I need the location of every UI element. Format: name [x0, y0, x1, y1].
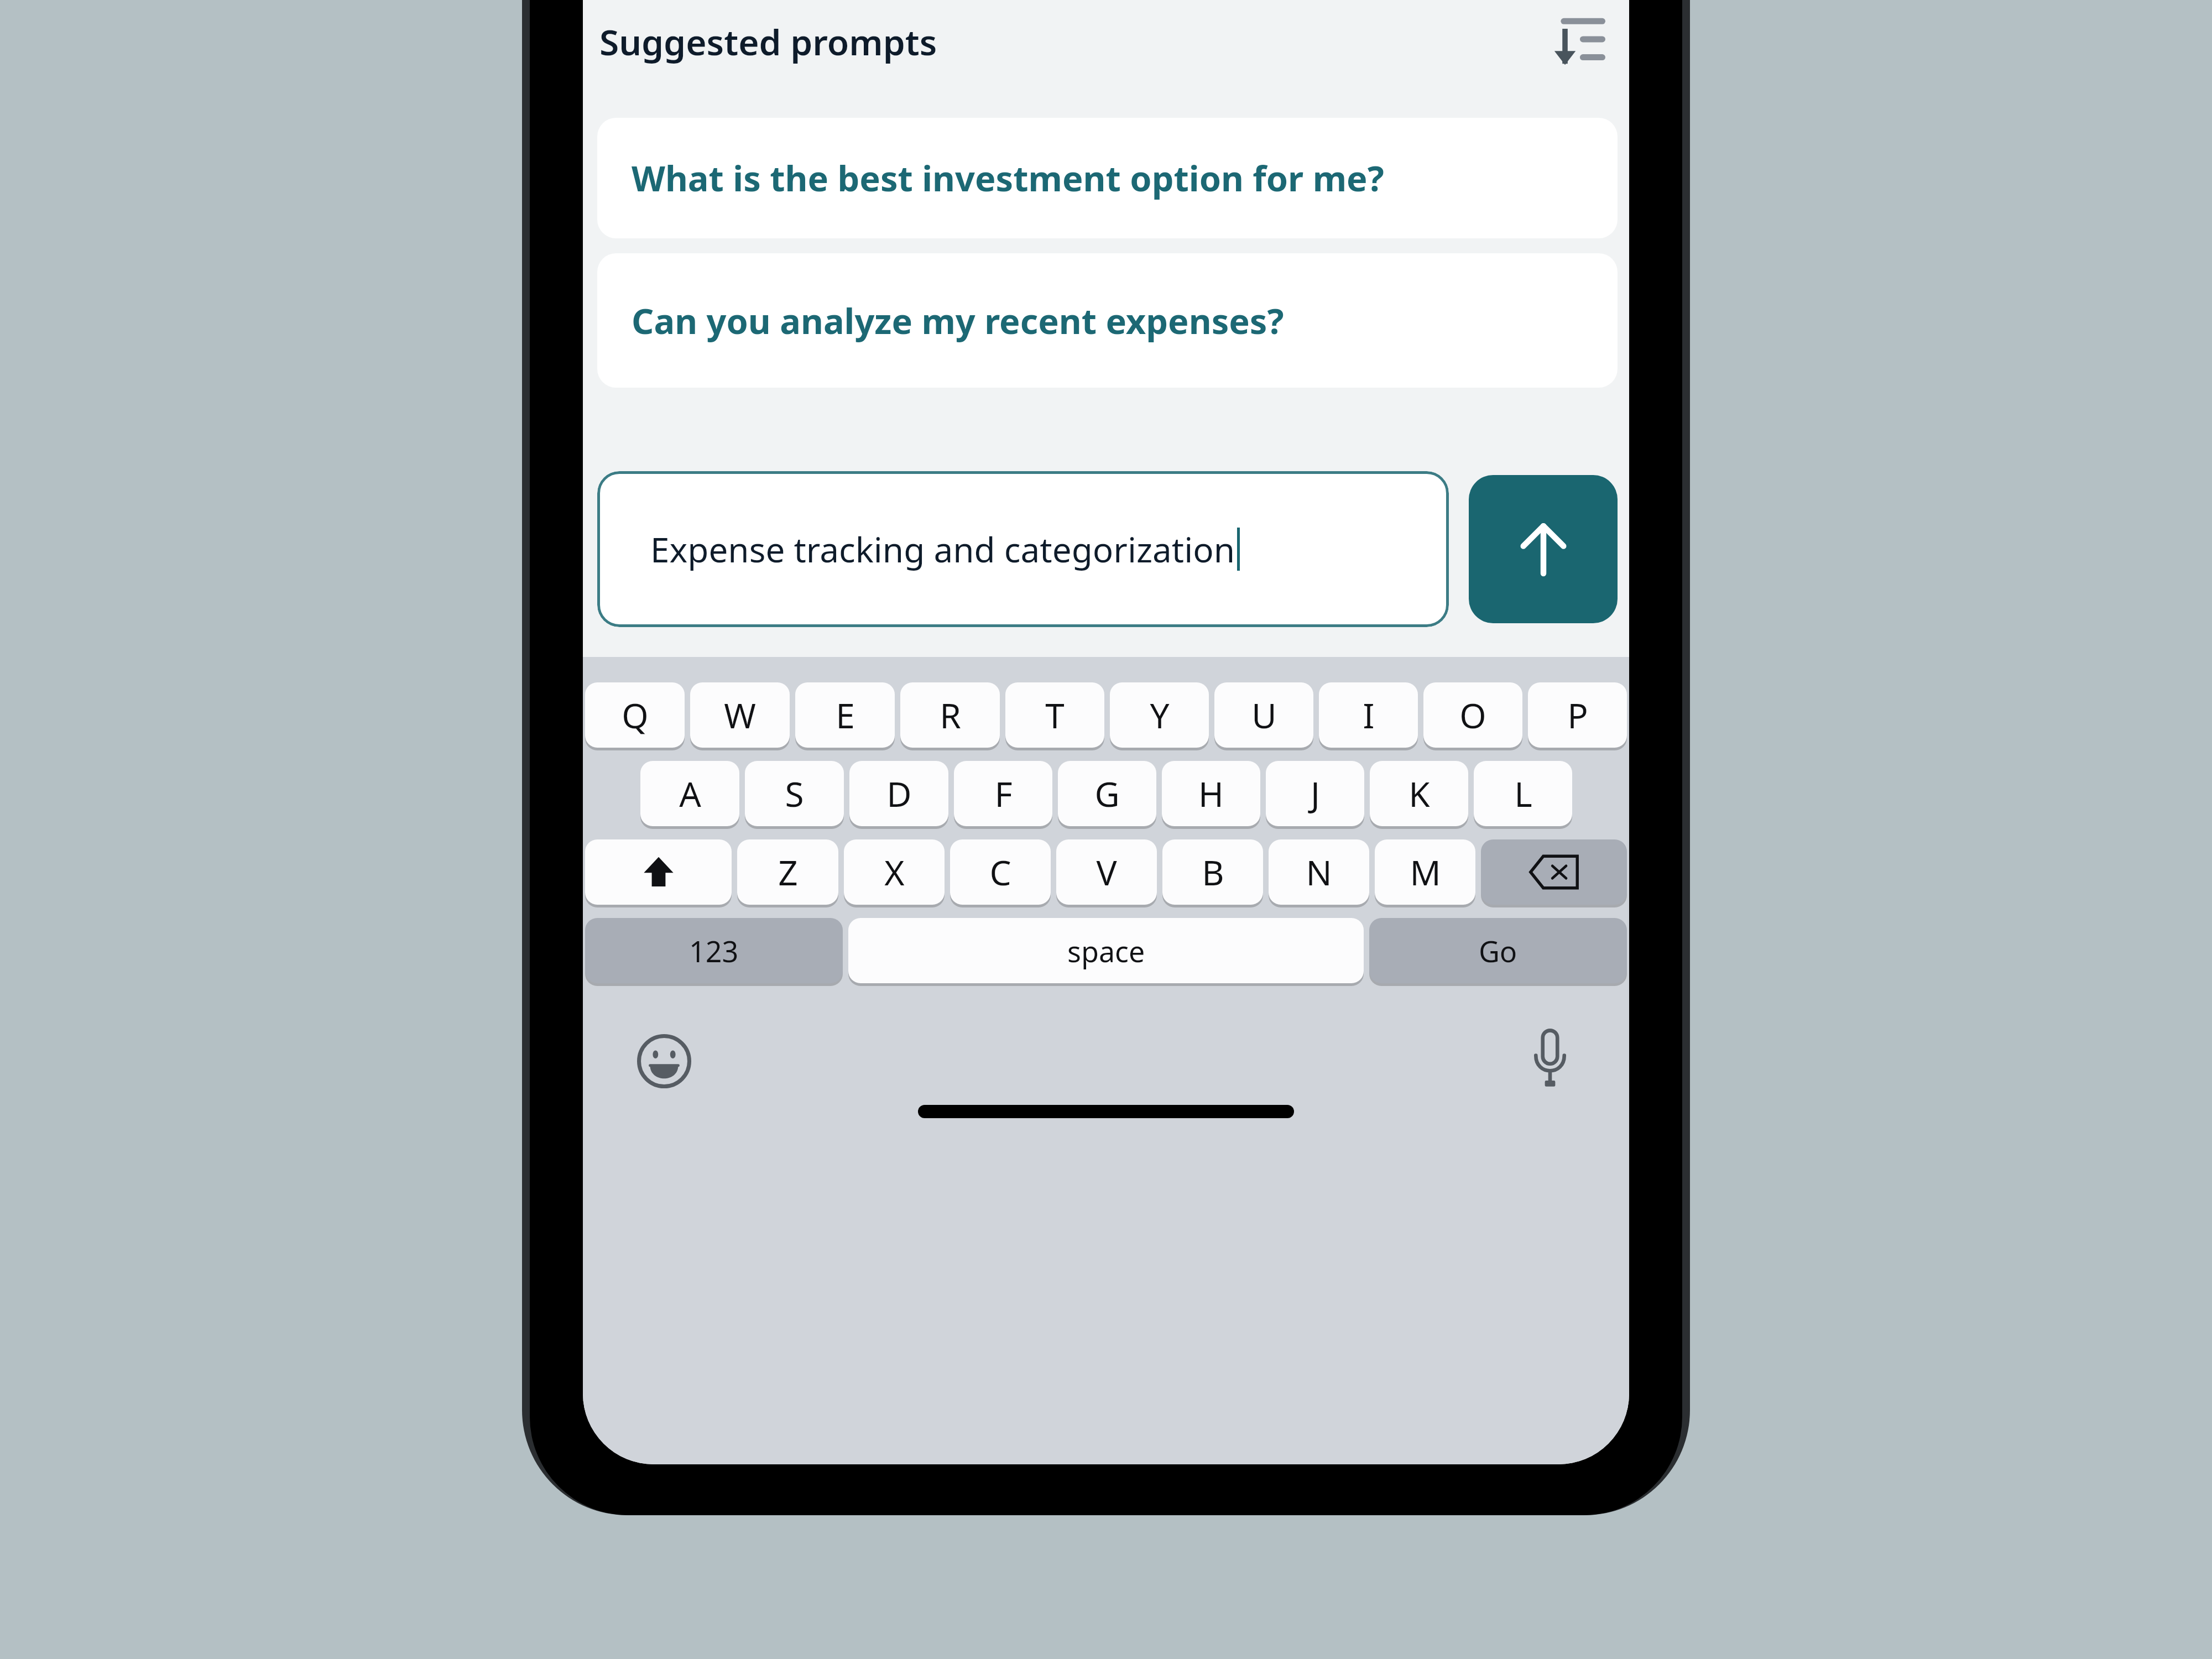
button[interactable]: A [640, 761, 739, 826]
staticText: C [989, 849, 1011, 895]
button[interactable]: I [1319, 682, 1418, 748]
button[interactable]: Shift [585, 839, 732, 905]
staticText: N [1306, 849, 1332, 895]
staticText: K [1408, 770, 1430, 817]
button[interactable]: Sort prompts [1543, 6, 1615, 77]
button[interactable]: B [1162, 839, 1263, 905]
button[interactable]: T [1005, 682, 1104, 748]
button[interactable]: G [1058, 761, 1156, 826]
staticText: X [884, 849, 905, 895]
button[interactable]: R [900, 682, 1000, 748]
button[interactable]: U [1214, 682, 1313, 748]
button[interactable]: C [950, 839, 1051, 905]
button[interactable]: Q [585, 682, 685, 748]
staticText: space [1067, 931, 1145, 971]
staticText: M [1410, 849, 1441, 895]
button[interactable]: M [1375, 839, 1475, 905]
button[interactable]: Emoji keyboard [628, 1025, 700, 1097]
staticText: L [1514, 770, 1532, 817]
staticText: J [1311, 770, 1320, 817]
button[interactable]: X [844, 839, 945, 905]
button[interactable]: V [1056, 839, 1157, 905]
button[interactable]: Can you analyze my recent expenses? [597, 253, 1618, 388]
staticText: Z [778, 849, 798, 895]
button[interactable]: K [1370, 761, 1468, 826]
button[interactable]: W [690, 682, 790, 748]
staticText: G [1094, 770, 1120, 817]
button[interactable]: Voice input [1514, 1022, 1586, 1094]
staticText: T [1045, 692, 1065, 738]
staticText: Can you analyze my recent expenses? [632, 297, 1284, 345]
staticText: Go [1479, 931, 1517, 971]
staticText: What is the best investment option for m… [632, 154, 1384, 202]
button[interactable]: 123 [585, 918, 843, 983]
button[interactable]: F [954, 761, 1052, 826]
staticText: V [1096, 849, 1117, 895]
button[interactable]: Backspace [1481, 839, 1627, 905]
staticText: R [940, 692, 961, 738]
button[interactable]: L [1474, 761, 1572, 826]
staticText: Suggested prompts [599, 18, 937, 66]
button[interactable]: What is the best investment option for m… [597, 118, 1618, 238]
button[interactable]: S [745, 761, 844, 826]
staticText: Y [1150, 692, 1170, 738]
staticText: B [1202, 849, 1224, 895]
staticText: F [994, 770, 1013, 817]
button[interactable]: P [1528, 682, 1627, 748]
staticText: W [724, 692, 756, 738]
staticText: S [785, 770, 804, 817]
button[interactable]: Expense tracking and categorization [597, 471, 1449, 627]
button[interactable]: H [1162, 761, 1260, 826]
button[interactable]: D [849, 761, 948, 826]
staticText: E [836, 692, 855, 738]
button[interactable]: N [1269, 839, 1369, 905]
button[interactable]: space [848, 918, 1364, 983]
button[interactable]: O [1423, 682, 1522, 748]
staticText: I [1363, 692, 1375, 738]
button[interactable]: Z [737, 839, 838, 905]
button[interactable]: Y [1110, 682, 1209, 748]
button[interactable]: Send [1469, 475, 1618, 623]
staticText: 123 [689, 931, 739, 971]
staticText: O [1459, 692, 1486, 738]
button[interactable]: J [1266, 761, 1364, 826]
button[interactable]: Go [1369, 918, 1627, 983]
staticText: D [886, 770, 912, 817]
staticText: H [1198, 770, 1224, 817]
staticText: U [1251, 692, 1277, 738]
button[interactable]: E [795, 682, 895, 748]
staticText: Expense tracking and categorization [650, 526, 1235, 572]
staticText: P [1567, 692, 1588, 738]
staticText: A [679, 770, 701, 817]
staticText: Q [622, 692, 649, 738]
